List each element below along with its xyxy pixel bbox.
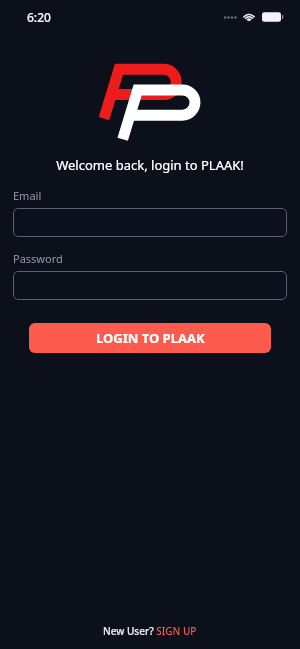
staticText: Welcome back, login to PLAAK! (56, 156, 244, 174)
staticText: 6:20 (27, 9, 51, 25)
button[interactable]: Password input (13, 271, 287, 300)
button[interactable]: New User? SIGN UP (97, 621, 203, 641)
staticText: New User? SIGN UP (103, 624, 197, 638)
staticText: Email (13, 188, 42, 203)
staticText: Password (13, 251, 63, 266)
button[interactable]: LOGIN TO PLAAK (29, 323, 271, 353)
staticText: LOGIN TO PLAAK (96, 329, 205, 347)
button[interactable]: Email input (13, 208, 287, 237)
